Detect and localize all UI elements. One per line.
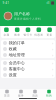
staticText: › bbox=[52, 40, 53, 46]
button[interactable]: 客服中心 bbox=[1, 66, 55, 72]
staticText: › bbox=[52, 46, 53, 52]
staticText: › bbox=[52, 66, 53, 72]
button[interactable]: 优惠券 bbox=[33, 27, 44, 37]
staticText: 会员中心 bbox=[9, 60, 25, 65]
staticText: › bbox=[52, 72, 53, 78]
button[interactable]: 消息 bbox=[28, 89, 42, 98]
button[interactable]: 余额 bbox=[1, 27, 12, 37]
button[interactable]: 服务 bbox=[14, 89, 28, 98]
staticText: 我的 bbox=[46, 94, 52, 97]
staticText: › bbox=[52, 60, 53, 66]
staticText: 设置 bbox=[9, 72, 17, 77]
staticText: 收藏 bbox=[9, 46, 17, 51]
staticText: 银行卡 bbox=[23, 33, 32, 37]
staticText: 查看并编辑个人资料 bbox=[14, 17, 41, 20]
staticText: 首页 bbox=[4, 94, 10, 97]
staticText: 用户名称 bbox=[14, 11, 30, 16]
staticText: 服务 bbox=[18, 94, 24, 97]
button[interactable]: 银行卡 bbox=[23, 27, 33, 37]
button[interactable]: 更多 bbox=[44, 27, 55, 37]
staticText: 优惠券 bbox=[34, 33, 43, 37]
staticText: 消息 bbox=[32, 94, 38, 97]
button[interactable]: 地址管理 bbox=[1, 52, 55, 58]
button[interactable]: 设置 bbox=[1, 72, 55, 78]
button[interactable]: 首页 bbox=[0, 89, 14, 98]
staticText: 更多 bbox=[47, 33, 53, 37]
button[interactable]: 我的 bbox=[42, 89, 56, 98]
staticText: 客服中心 bbox=[9, 66, 25, 71]
staticText: › bbox=[52, 52, 53, 58]
staticText: 地址管理 bbox=[9, 52, 25, 57]
button[interactable]: 账单 bbox=[12, 27, 23, 37]
button[interactable]: 我的订单 bbox=[1, 40, 55, 46]
staticText: 余额 bbox=[3, 33, 9, 37]
staticText: 9:41 bbox=[2, 1, 9, 5]
staticText: 账单 bbox=[14, 33, 20, 37]
button[interactable]: 收藏 bbox=[1, 46, 55, 52]
staticText: 我的订单 bbox=[9, 40, 25, 45]
staticText: ıll ⬛ bbox=[46, 1, 53, 5]
button[interactable]: 会员中心 bbox=[1, 60, 55, 66]
